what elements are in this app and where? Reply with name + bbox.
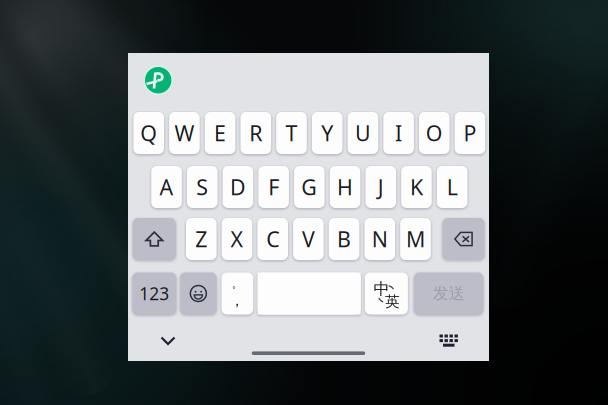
button[interactable]: Shift [133,218,176,260]
staticText: F [268,173,279,201]
staticText: R [249,119,262,147]
button[interactable]: W [169,112,200,154]
button[interactable]: H [330,166,360,208]
button[interactable]: R [240,112,271,154]
staticText: 123 [139,282,169,305]
button[interactable]: U [348,112,378,154]
button[interactable]: J [365,166,396,208]
staticText: P [463,119,476,147]
staticText: O [426,119,443,147]
staticText: K [410,173,423,201]
staticText: C [266,225,279,253]
button[interactable]: Q [133,112,164,154]
staticText: 中 [373,279,389,299]
staticText: D [230,173,246,201]
button[interactable]: P [455,112,485,154]
button[interactable]: Y [312,112,342,154]
button[interactable]: N [364,218,395,260]
staticText: M [406,225,425,253]
button[interactable]: Collapse keyboard [148,325,188,357]
button[interactable]: Z [186,218,217,260]
button[interactable]: Chinese English toggle [365,272,408,314]
staticText: 发送 [433,284,465,303]
staticText: H [337,173,353,201]
button[interactable]: Emoji [180,272,217,314]
staticText: I [395,119,402,147]
button[interactable]: X [222,218,252,260]
button[interactable]: A [151,166,182,208]
button[interactable]: C [257,218,288,260]
staticText: Q [140,119,157,147]
staticText: E [214,119,226,147]
staticText: U [355,119,371,147]
button[interactable]: O [419,112,450,154]
button[interactable]: S [187,166,217,208]
staticText: ， [230,291,245,309]
staticText: L [447,173,458,201]
staticText: T [285,119,297,147]
button[interactable]: 发送 [414,272,483,314]
staticText: Z [195,225,207,253]
button[interactable]: 123 [132,272,176,314]
button[interactable]: D [223,166,253,208]
button[interactable]: T [276,112,307,154]
staticText: 。 [232,277,243,290]
staticText: Y [321,119,333,147]
staticText: N [372,225,388,253]
button[interactable]: G [294,166,325,208]
staticText: G [301,173,317,201]
button[interactable]: M [400,218,431,260]
staticText: V [302,225,315,253]
staticText: X [230,225,243,253]
button[interactable]: E [205,112,235,154]
button[interactable]: 。 [221,272,253,314]
button[interactable]: L [437,166,467,208]
staticText: J [378,173,384,201]
button[interactable]: Delete [442,218,484,260]
staticText: 英 [385,292,400,310]
staticText: A [160,173,174,201]
button[interactable]: K [401,166,432,208]
button[interactable]: I [383,112,414,154]
button[interactable]: V [293,218,324,260]
button[interactable]: F [258,166,289,208]
staticText: S [196,173,208,201]
button[interactable]: B [329,218,359,260]
staticText: W [174,119,194,147]
staticText: B [337,225,351,253]
button[interactable]: Switch keyboard [429,325,469,357]
